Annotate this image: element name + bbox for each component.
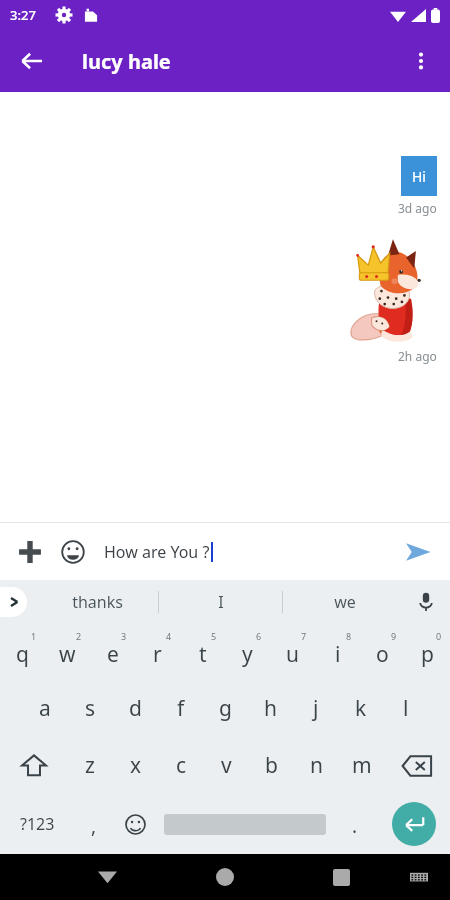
- staticText: 6: [256, 630, 262, 642]
- button[interactable]: y: [225, 623, 270, 680]
- button[interactable]: Enter: [377, 794, 450, 854]
- button[interactable]: Switch keyboard: [402, 860, 436, 894]
- staticText: ?123: [20, 813, 55, 835]
- staticText: Hi: [412, 167, 426, 186]
- staticText: i: [335, 640, 341, 669]
- button[interactable]: q: [0, 623, 45, 680]
- button[interactable]: s: [68, 680, 113, 737]
- button[interactable]: Backspace: [384, 737, 450, 794]
- button[interactable]: f: [158, 680, 203, 737]
- staticText: 3: [121, 630, 127, 642]
- staticText: j: [313, 694, 319, 723]
- button[interactable]: v: [204, 737, 249, 794]
- staticText: e: [107, 640, 119, 669]
- staticText: 2h ago: [398, 348, 437, 364]
- staticText: q: [16, 640, 29, 669]
- button[interactable]: m: [339, 737, 384, 794]
- button[interactable]: Shift: [0, 737, 67, 794]
- staticText: f: [177, 694, 185, 723]
- button[interactable]: Home: [203, 855, 247, 899]
- staticText: 3d ago: [398, 200, 437, 216]
- staticText: g: [219, 694, 232, 723]
- button[interactable]: w: [45, 623, 90, 680]
- staticText: m: [352, 751, 372, 780]
- button[interactable]: Space: [157, 794, 333, 854]
- staticText: 7: [301, 630, 307, 642]
- button[interactable]: d: [113, 680, 158, 737]
- staticText: lucy hale: [82, 48, 171, 75]
- button[interactable]: Expand suggestions: [0, 587, 27, 617]
- button[interactable]: t: [180, 623, 225, 680]
- button[interactable]: r: [135, 623, 180, 680]
- staticText: w: [59, 640, 76, 669]
- staticText: 1: [31, 630, 37, 642]
- staticText: 2: [76, 630, 82, 642]
- staticText: t: [199, 640, 207, 669]
- button[interactable]: I: [159, 580, 282, 623]
- button[interactable]: Emoji: [52, 531, 94, 573]
- button[interactable]: Hi: [401, 156, 437, 196]
- staticText: 8: [346, 630, 352, 642]
- staticText: thanks: [72, 591, 123, 613]
- staticText: h: [264, 694, 277, 723]
- button[interactable]: u: [270, 623, 315, 680]
- staticText: 9: [391, 630, 397, 642]
- button[interactable]: Period: [333, 794, 377, 854]
- staticText: z: [85, 751, 95, 780]
- staticText: ,: [91, 813, 97, 839]
- staticText: k: [355, 694, 367, 723]
- staticText: v: [221, 751, 232, 780]
- button[interactable]: ?123: [0, 794, 74, 854]
- button[interactable]: a: [22, 680, 68, 737]
- staticText: p: [421, 640, 434, 669]
- button[interactable]: Back: [85, 855, 129, 899]
- staticText: y: [242, 640, 253, 669]
- staticText: u: [286, 640, 299, 669]
- staticText: r: [153, 640, 162, 669]
- staticText: n: [310, 751, 323, 780]
- button[interactable]: Add attachment: [8, 530, 52, 574]
- staticText: 3:27: [10, 6, 36, 24]
- button[interactable]: Send: [396, 530, 440, 574]
- button[interactable]: we: [283, 580, 406, 623]
- button[interactable]: Recent apps: [319, 855, 363, 899]
- staticText: How are You ?: [104, 541, 210, 563]
- button[interactable]: z: [67, 737, 113, 794]
- staticText: d: [129, 694, 142, 723]
- button[interactable]: x: [113, 737, 159, 794]
- button[interactable]: i: [315, 623, 360, 680]
- button[interactable]: c: [159, 737, 204, 794]
- staticText: o: [376, 640, 389, 669]
- button[interactable]: More options: [398, 38, 444, 84]
- staticText: c: [176, 751, 187, 780]
- button[interactable]: Comma: [74, 794, 113, 854]
- staticText: I: [218, 591, 224, 613]
- button[interactable]: o: [360, 623, 405, 680]
- button[interactable]: h: [248, 680, 293, 737]
- button[interactable]: Back: [8, 37, 56, 85]
- staticText: .: [352, 813, 358, 839]
- button[interactable]: Voice input: [408, 584, 444, 620]
- button[interactable]: b: [249, 737, 294, 794]
- staticText: a: [39, 694, 51, 723]
- button[interactable]: n: [294, 737, 339, 794]
- button[interactable]: j: [293, 680, 338, 737]
- button[interactable]: e: [90, 623, 135, 680]
- staticText: x: [130, 751, 142, 780]
- staticText: 4: [166, 630, 172, 642]
- staticText: 0: [436, 630, 442, 642]
- button[interactable]: k: [338, 680, 383, 737]
- staticText: s: [85, 694, 96, 723]
- staticText: we: [334, 591, 356, 613]
- staticText: 5: [211, 630, 217, 642]
- staticText: b: [265, 751, 278, 780]
- button[interactable]: g: [203, 680, 248, 737]
- button[interactable]: thanks: [36, 580, 158, 623]
- button[interactable]: p: [405, 623, 450, 680]
- button[interactable]: l: [383, 680, 428, 737]
- button[interactable]: [347, 236, 429, 344]
- staticText: l: [403, 694, 409, 723]
- button[interactable]: Emoji keyboard: [113, 794, 157, 854]
